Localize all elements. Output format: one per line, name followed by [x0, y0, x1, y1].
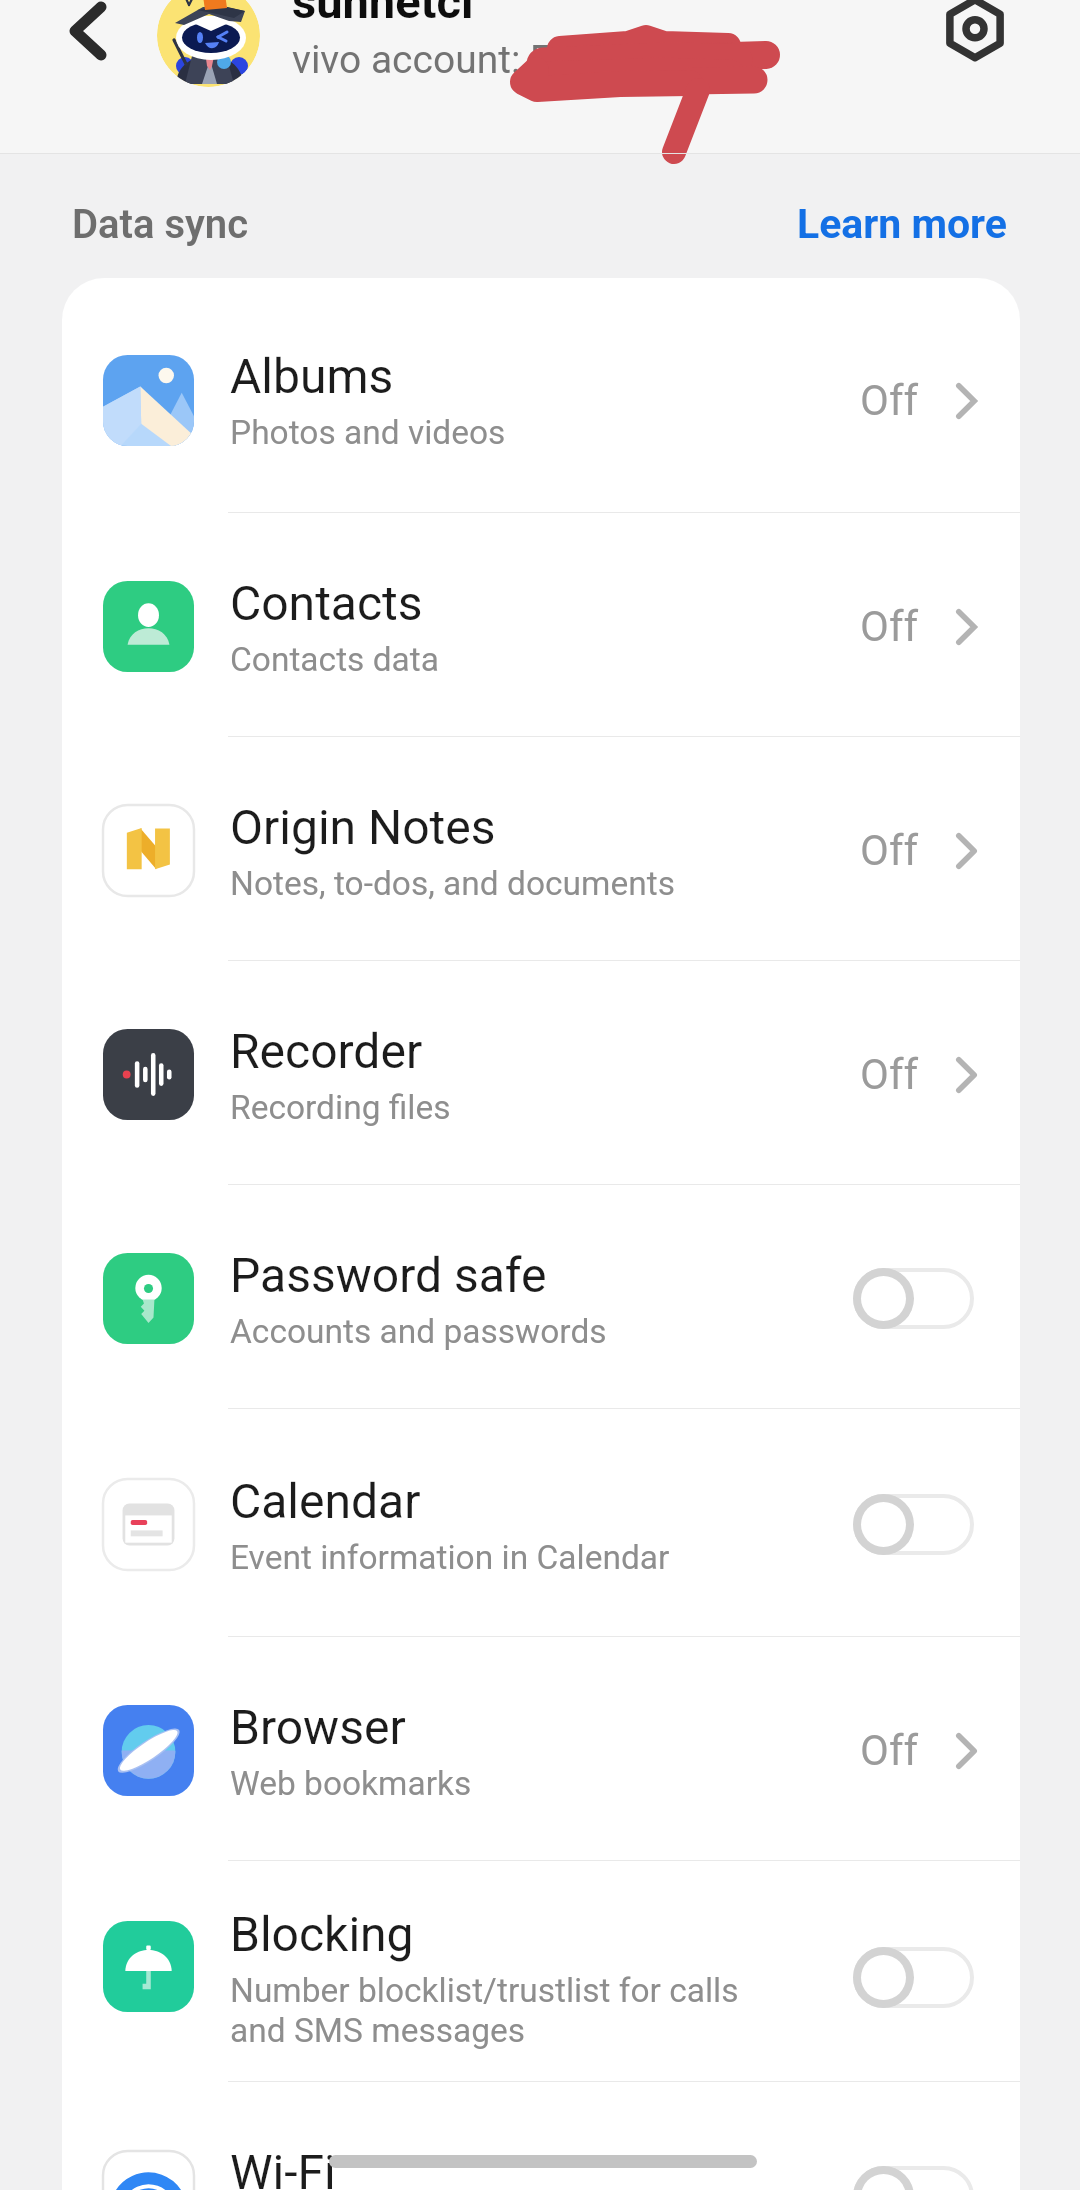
- button[interactable]: Password safe toggle: [853, 1268, 974, 1329]
- staticText: Password safe: [230, 1247, 547, 1303]
- staticText: Off: [860, 1726, 919, 1775]
- staticText: Off: [860, 602, 919, 651]
- staticText: Contacts data: [230, 640, 439, 679]
- staticText: vivo account: F: [292, 37, 552, 83]
- button[interactable]: Blocking toggle: [853, 1947, 974, 2008]
- button[interactable]: Origin Notes: [62, 737, 1020, 960]
- button[interactable]: Albums: [62, 278, 1020, 512]
- staticText: Event information in Calendar: [230, 1538, 670, 1577]
- staticText: Off: [860, 1050, 919, 1099]
- staticText: Recorder: [230, 1023, 423, 1079]
- staticText: Browser: [230, 1699, 406, 1755]
- staticText: sunnetci: [292, 0, 474, 29]
- button[interactable]: Calendar toggle: [853, 1494, 974, 1555]
- staticText: Photos and videos: [230, 413, 506, 452]
- staticText: Origin Notes: [230, 799, 496, 855]
- button[interactable]: Wi-Fi toggle: [853, 2166, 974, 2190]
- button[interactable]: Calendar: [62, 1409, 1020, 1636]
- staticText: Number blocklist/trustlist for calls and…: [230, 1971, 739, 2050]
- staticText: Data sync: [72, 201, 249, 248]
- staticText: Recording files: [230, 1088, 451, 1127]
- button[interactable]: Wi-Fi: [62, 2082, 1020, 2190]
- staticText: Web bookmarks: [230, 1764, 472, 1803]
- staticText: Accounts and passwords: [230, 1312, 607, 1351]
- staticText: Calendar: [230, 1473, 421, 1529]
- staticText: Wi-Fi: [230, 2144, 336, 2190]
- staticText: Blocking: [230, 1906, 414, 1962]
- button[interactable]: Settings: [925, 0, 1025, 79]
- staticText: Off: [860, 376, 919, 425]
- button[interactable]: Recorder: [62, 961, 1020, 1184]
- staticText: Notes, to-dos, and documents: [230, 864, 675, 903]
- button[interactable]: Back: [40, 0, 134, 78]
- button[interactable]: Contacts: [62, 513, 1020, 736]
- button[interactable]: Learn more: [797, 200, 1007, 248]
- button[interactable]: Password safe: [62, 1185, 1020, 1408]
- staticText: Learn more: [797, 200, 1007, 248]
- button[interactable]: Blocking: [62, 1861, 1020, 2081]
- button[interactable]: Browser: [62, 1637, 1020, 1860]
- staticText: Off: [860, 826, 919, 875]
- staticText: Albums: [230, 348, 394, 404]
- staticText: Contacts: [230, 575, 423, 631]
